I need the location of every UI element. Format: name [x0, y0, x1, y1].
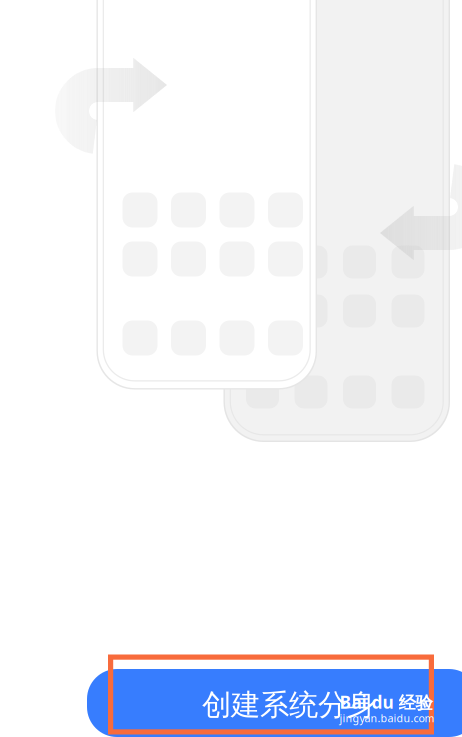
staticText: Bai du 经验 — [339, 690, 432, 713]
button[interactable]: 创建系统分身 — [0, 0, 462, 737]
staticText: jingyan.baidu.com — [339, 711, 434, 725]
staticText: 创建系统分身 — [202, 687, 376, 723]
